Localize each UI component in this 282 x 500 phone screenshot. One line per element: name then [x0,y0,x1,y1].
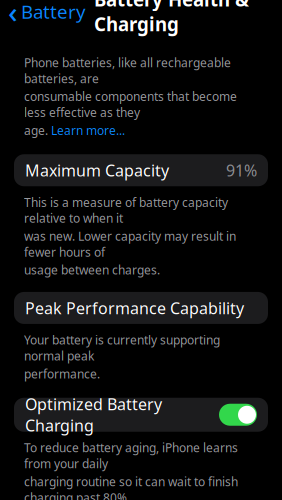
staticText: charging routine so it can wait to finis… [24,474,238,500]
staticText: This is a measure of battery capacity re… [24,194,228,226]
staticText: Battery [21,0,86,24]
staticText: consumable components that become less e… [24,88,237,120]
staticText: 91% [226,160,257,181]
button[interactable]: Peak Performance Capability [14,292,268,324]
button[interactable]: Maximum Capacity [14,154,268,186]
staticText: Your battery is currently supporting nor… [24,332,220,364]
staticText: Battery Health & Charging [94,0,249,36]
staticText: Maximum Capacity [25,160,169,181]
staticText: was new. Lower capacity may result in fe… [24,228,236,260]
button[interactable]: ‹ [0,0,86,35]
staticText: Phone batteries, like all rechargeable b… [24,55,231,86]
staticText: usage between charges. [24,262,160,278]
staticText: performance. [24,366,100,382]
button[interactable]: Optimized Battery Charging [14,398,268,432]
staticText: To reduce battery aging, iPhone learns f… [24,440,238,472]
staticText: Learn more... [51,122,125,138]
staticText: ‹ [8,0,18,31]
staticText: Peak Performance Capability [25,297,244,318]
staticText: Optimized Battery Charging [25,393,162,436]
staticText: age. [24,122,51,138]
button[interactable]: Learn more... [51,122,125,138]
